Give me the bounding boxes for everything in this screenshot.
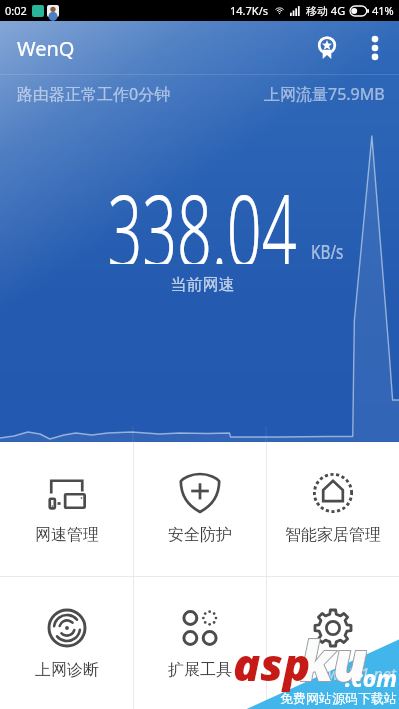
- button[interactable]: 安全防护: [134, 442, 266, 576]
- button[interactable]: More options: [351, 24, 399, 72]
- staticText: asp: [233, 633, 311, 694]
- button[interactable]: 智能家居管理: [267, 442, 399, 576]
- staticText: 14.7K/s: [230, 3, 268, 18]
- staticText: 上网流量75.9MB: [264, 83, 385, 105]
- staticText: .com: [345, 662, 398, 693]
- staticText: 338.04: [107, 160, 296, 264]
- staticText: WenQ: [17, 35, 75, 62]
- button[interactable]: 网速管理: [0, 442, 133, 576]
- staticText: 网速管理: [35, 525, 99, 545]
- staticText: ku: [300, 623, 367, 693]
- button[interactable]: [267, 577, 399, 709]
- staticText: 智能家居管理: [285, 525, 381, 545]
- staticText: 0:02: [5, 3, 27, 18]
- staticText: 41%: [372, 3, 394, 18]
- staticText: ku: [300, 623, 367, 693]
- staticText: 路由器正常工作0分钟: [17, 83, 171, 105]
- button[interactable]: Achievements: [303, 24, 351, 72]
- button[interactable]: 上网诊断: [0, 577, 133, 709]
- staticText: KB/s: [311, 239, 344, 265]
- staticText: wei51.net: [328, 663, 396, 685]
- button[interactable]: 扩展工具: [134, 577, 266, 709]
- staticText: 移动 4G: [306, 3, 346, 18]
- staticText: 上网诊断: [35, 660, 99, 680]
- staticText: 免费网站源码下载站: [280, 690, 397, 706]
- staticText: 安全防护: [168, 525, 232, 545]
- staticText: 扩展工具: [168, 660, 232, 680]
- staticText: 当前网速: [3, 275, 399, 295]
